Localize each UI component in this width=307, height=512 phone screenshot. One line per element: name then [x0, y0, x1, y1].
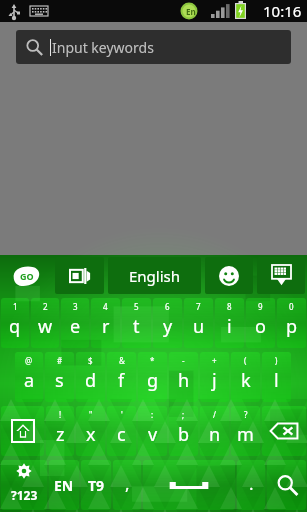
staticText: : [151, 409, 154, 420]
button[interactable]: English [108, 257, 201, 294]
staticText: 3 [73, 301, 78, 312]
button[interactable]: 0 [277, 298, 306, 348]
button[interactable]: Hide keyboard [257, 257, 305, 294]
staticText: ?123 [11, 487, 38, 503]
staticText: English [129, 266, 181, 286]
staticText: v [148, 422, 158, 447]
staticText: p [286, 314, 298, 339]
staticText: e [70, 314, 81, 339]
staticText: ? [244, 409, 248, 420]
button[interactable]: Input keywords [16, 30, 291, 64]
staticText: m [237, 422, 254, 447]
button[interactable]: : [138, 406, 167, 456]
button[interactable]: 2 [31, 298, 59, 348]
button[interactable]: GO Keyboard menu [0, 255, 53, 296]
staticText: a [24, 368, 35, 393]
staticText: Input keywords [52, 38, 154, 57]
button[interactable]: @ [15, 352, 43, 402]
staticText: c [117, 422, 126, 447]
button[interactable]: ! [46, 406, 74, 456]
staticText: i [227, 314, 232, 339]
staticText: GO [20, 270, 34, 282]
button[interactable]: " [76, 406, 105, 456]
staticText: ) [275, 355, 278, 366]
button[interactable]: 9 [246, 298, 275, 348]
staticText: 0 [289, 301, 294, 312]
button[interactable]: & [107, 352, 136, 402]
staticText: 5 [134, 301, 139, 312]
staticText: k [241, 368, 251, 393]
staticText: u [193, 314, 205, 339]
staticText: T9 [88, 476, 105, 495]
staticText: n [209, 422, 221, 447]
staticText: " [89, 409, 93, 420]
button[interactable]: EN [49, 460, 79, 510]
staticText: - [182, 355, 185, 366]
button[interactable]: / [200, 406, 229, 456]
button[interactable]: 1 [1, 298, 29, 348]
button[interactable]: Search [267, 460, 306, 510]
staticText: o [255, 314, 266, 339]
staticText: & [119, 355, 125, 366]
staticText: 7 [196, 301, 201, 312]
button[interactable]: ?123 [1, 460, 47, 510]
button[interactable]: # [45, 352, 74, 402]
staticText: 8 [227, 301, 232, 312]
button[interactable]: - [169, 352, 198, 402]
button[interactable]: + [200, 352, 229, 402]
staticText: . [249, 472, 254, 495]
button[interactable]: $ [76, 352, 105, 402]
button[interactable]: Emoji [205, 257, 253, 294]
button[interactable]: . [237, 460, 265, 510]
button[interactable]: T9 [81, 460, 111, 510]
staticText: w [38, 314, 53, 339]
staticText: f [118, 368, 125, 393]
button[interactable]: * [138, 352, 167, 402]
button[interactable]: Space [143, 460, 235, 510]
staticText: @ [25, 355, 33, 366]
staticText: l [274, 368, 279, 393]
staticText: 10:16 [263, 1, 302, 21]
staticText: g [147, 368, 159, 393]
button[interactable]: 6 [153, 298, 182, 348]
staticText: h [178, 368, 190, 393]
staticText: / [213, 409, 216, 420]
staticText: x [86, 422, 96, 447]
staticText: ; [182, 409, 185, 420]
staticText: z [56, 422, 65, 447]
staticText: ( [244, 355, 247, 366]
staticText: 4 [103, 301, 108, 312]
staticText: b [178, 422, 190, 447]
staticText: ' [121, 409, 123, 420]
button[interactable]: ( [231, 352, 260, 402]
button[interactable]: ) [262, 352, 291, 402]
staticText: # [57, 355, 63, 366]
button[interactable]: ? [231, 406, 260, 456]
staticText: d [85, 368, 97, 393]
staticText: , [125, 472, 130, 495]
staticText: y [163, 314, 173, 339]
button[interactable]: 7 [184, 298, 213, 348]
button[interactable]: ' [107, 406, 136, 456]
staticText: + [212, 355, 217, 366]
staticText: 9 [258, 301, 263, 312]
button[interactable]: , [113, 460, 141, 510]
staticText: ! [59, 409, 62, 420]
staticText: $ [88, 355, 93, 366]
button[interactable]: 4 [91, 298, 120, 348]
staticText: * [150, 355, 155, 366]
staticText: s [55, 368, 64, 393]
staticText: 2 [43, 301, 48, 312]
button[interactable]: ; [169, 406, 198, 456]
button[interactable]: 8 [215, 298, 244, 348]
staticText: 1 [13, 301, 18, 312]
staticText: t [133, 314, 140, 339]
staticText: j [212, 368, 217, 393]
staticText: q [9, 314, 21, 339]
button[interactable]: Backspace [262, 406, 306, 456]
button[interactable]: 5 [122, 298, 151, 348]
button[interactable]: Theme [55, 257, 104, 294]
button[interactable]: 3 [61, 298, 89, 348]
staticText: En [186, 6, 196, 17]
button[interactable]: Shift [1, 406, 44, 456]
